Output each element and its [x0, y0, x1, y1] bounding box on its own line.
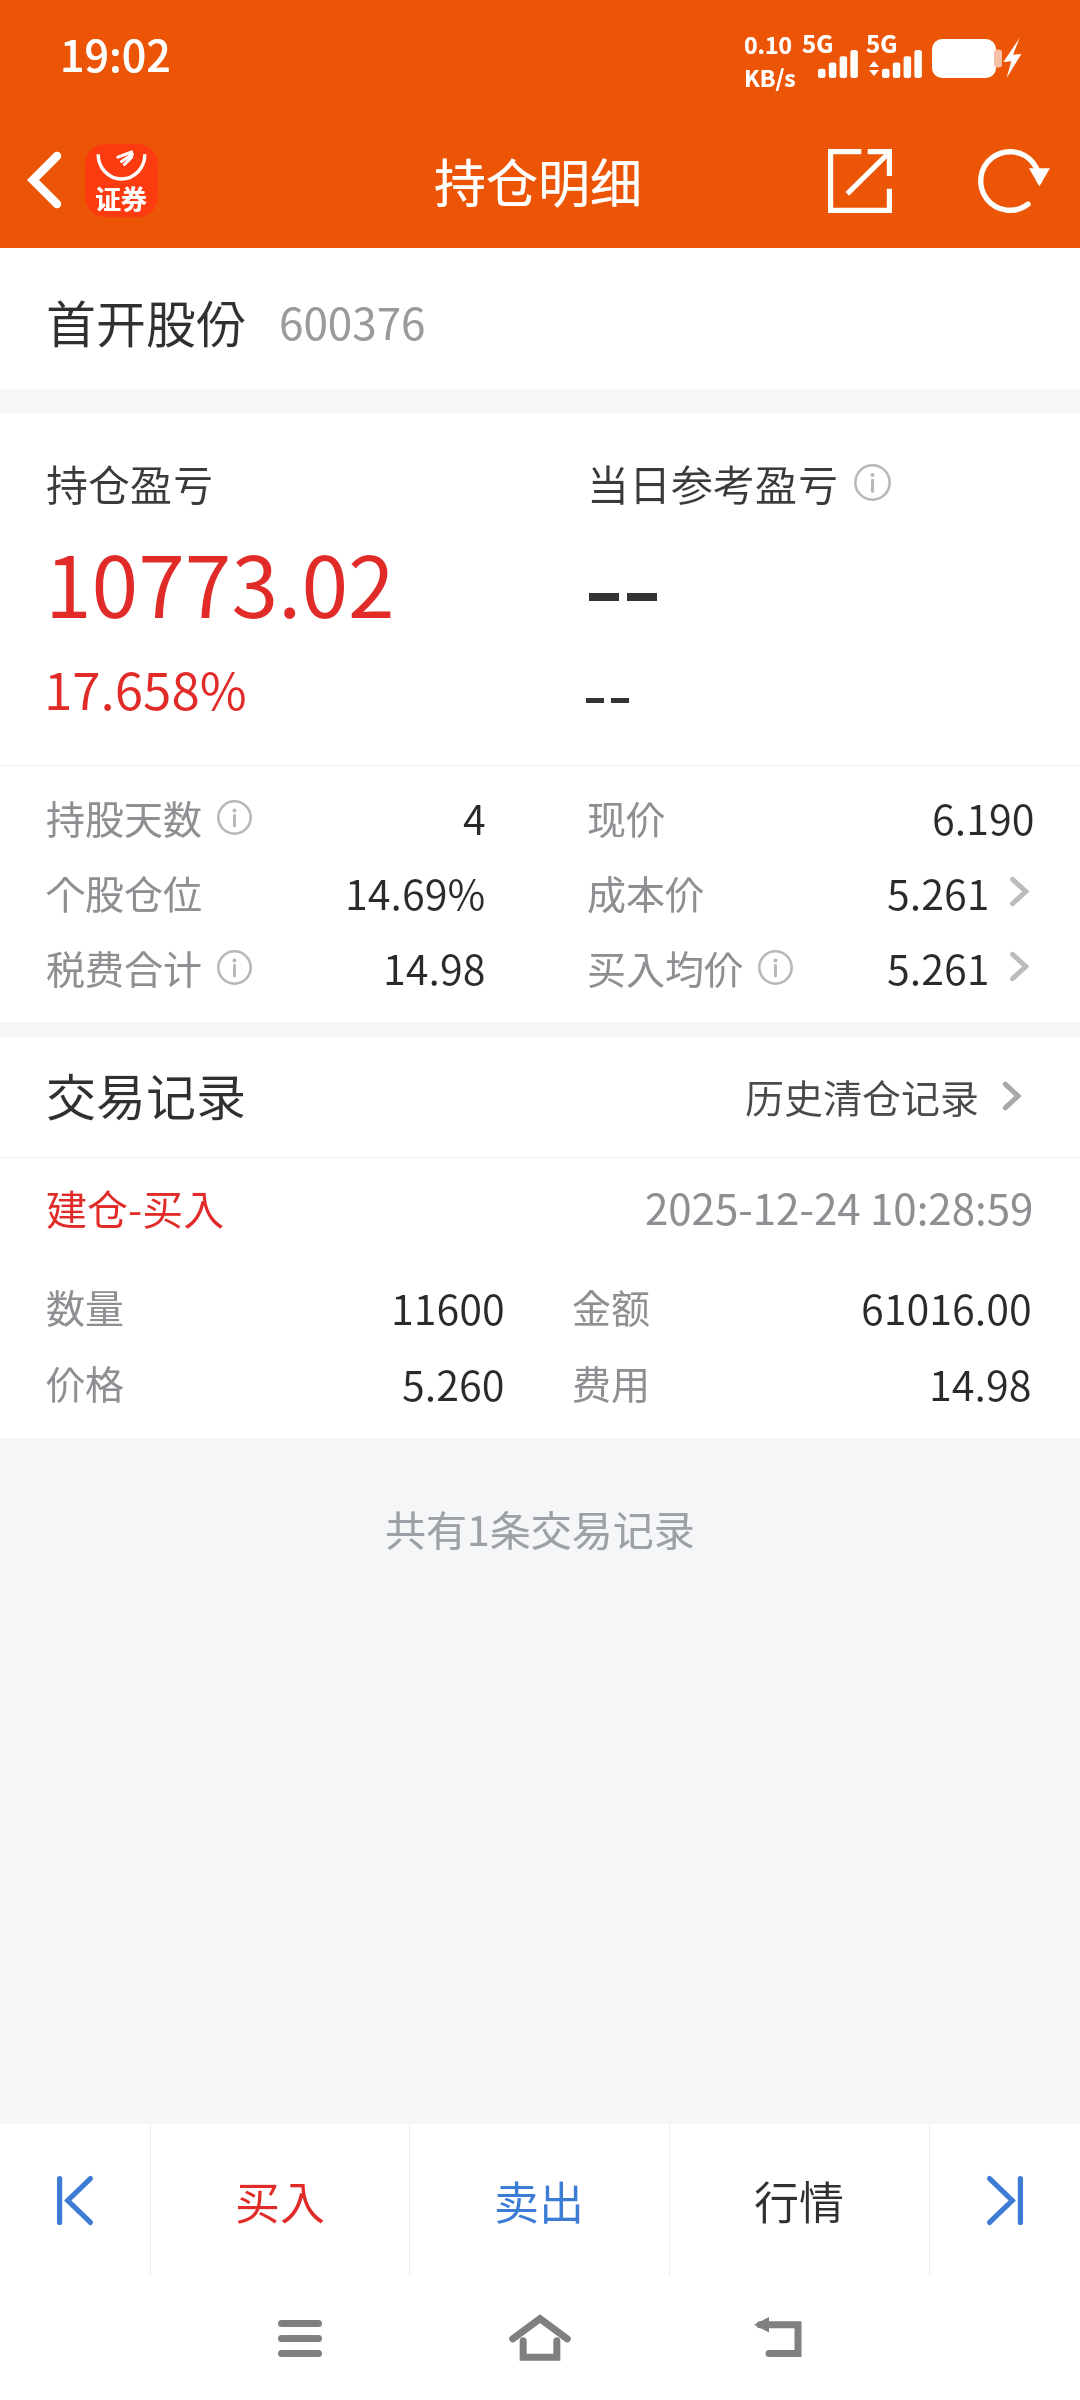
button[interactable]: Last page — [930, 2124, 1080, 2276]
staticText: 6.190 — [932, 787, 1035, 846]
staticText: KB/s — [744, 60, 796, 93]
staticText: 600376 — [279, 289, 426, 353]
staticText: 历史清仓记录 — [745, 1068, 980, 1124]
staticText: 14.98 — [383, 937, 486, 996]
staticText: 证券 — [95, 179, 148, 217]
staticText: 金额 — [572, 1278, 651, 1334]
staticText: 数量 — [46, 1278, 125, 1334]
button[interactable]: Back — [720, 2278, 840, 2398]
button[interactable]: 成本价 — [541, 854, 1080, 929]
button[interactable]: Home — [480, 2278, 600, 2398]
staticText: 持仓明细 — [434, 143, 643, 218]
staticText: 建仓-买入 — [46, 1177, 225, 1236]
staticText: 5G — [866, 25, 898, 60]
staticText: 11600 — [391, 1277, 505, 1336]
button[interactable]: Back — [1, 136, 89, 224]
button[interactable]: 首开股份 — [0, 248, 1080, 389]
button[interactable]: 卖出 — [410, 2124, 669, 2276]
staticText: 2025-12-24 10:28:59 — [645, 1176, 1034, 1237]
staticText: 当日参考盈亏 — [587, 452, 840, 513]
staticText: 5G — [802, 25, 834, 60]
staticText: 14.98 — [929, 1353, 1032, 1412]
staticText: 14.69% — [345, 862, 486, 921]
staticText: 价格 — [46, 1354, 125, 1410]
staticText: 5.260 — [402, 1353, 505, 1412]
staticText: 共有1条交易记录 — [385, 1498, 695, 1557]
staticText: 19:02 — [60, 22, 171, 84]
staticText: 持股天数 — [46, 789, 203, 845]
staticText: 税费合计 — [46, 939, 203, 995]
button[interactable]: Securities app — [85, 144, 158, 217]
button[interactable]: Refresh — [958, 129, 1062, 233]
staticText: 现价 — [587, 789, 666, 845]
staticText: 买入均价 — [587, 939, 744, 995]
staticText: 17.658% — [44, 651, 247, 725]
staticText: 行情 — [754, 2168, 845, 2233]
staticText: 费用 — [572, 1354, 651, 1410]
staticText: 5.261 — [887, 937, 990, 996]
staticText: 成本价 — [587, 864, 705, 920]
staticText: 首开股份 — [46, 285, 246, 357]
staticText: 持仓盈亏 — [46, 452, 215, 513]
button[interactable]: 买入 — [151, 2124, 409, 2276]
button[interactable]: Share — [808, 129, 912, 233]
staticText: 交易记录 — [46, 1058, 246, 1130]
staticText: 个股仓位 — [46, 864, 203, 920]
button[interactable]: First page — [0, 2124, 150, 2276]
button[interactable]: 历史清仓记录 — [745, 1069, 1080, 1125]
button[interactable]: 行情 — [670, 2124, 929, 2276]
button[interactable]: 买入均价 — [541, 929, 1080, 1004]
staticText: 4 — [463, 787, 486, 846]
staticText: 买入 — [235, 2168, 326, 2233]
staticText: 5.261 — [887, 862, 990, 921]
staticText: 卖出 — [494, 2168, 585, 2233]
staticText: 0.10 — [744, 27, 793, 60]
button[interactable]: Recents — [240, 2278, 360, 2398]
staticText: 10773.02 — [45, 521, 395, 643]
staticText: 61016.00 — [861, 1277, 1032, 1336]
